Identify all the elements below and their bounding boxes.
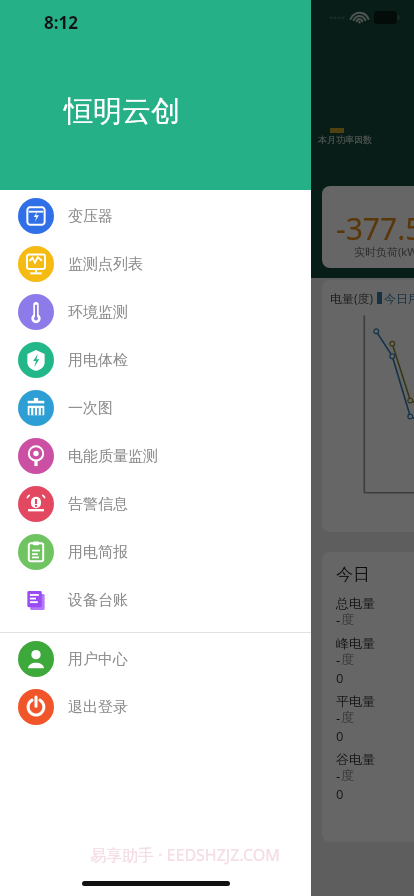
button[interactable]: 一次图: [0, 384, 311, 432]
staticText: 一次图: [68, 399, 311, 418]
staticText: 度: [341, 651, 354, 667]
staticText: 退出登录: [68, 698, 311, 717]
button[interactable]: 设备台账: [0, 576, 311, 624]
button[interactable]: 用户中心: [0, 635, 311, 683]
staticText: 度: [341, 767, 354, 783]
staticText: 环境监测: [68, 303, 311, 322]
button[interactable]: 环境监测: [0, 288, 311, 336]
staticText: 恒明云创: [64, 93, 180, 130]
staticText: 0: [336, 785, 344, 803]
staticText: -: [336, 709, 341, 727]
staticText: -377.5: [336, 208, 414, 249]
staticText: -: [336, 651, 341, 669]
button[interactable]: 电能质量监测: [0, 432, 311, 480]
staticText: -: [336, 767, 341, 785]
button[interactable]: 退出登录: [0, 683, 311, 731]
staticText: 变压器: [68, 207, 311, 226]
staticText: 今日用电: [384, 291, 414, 306]
button[interactable]: 告警信息: [0, 480, 311, 528]
staticText: 总电量: [336, 595, 375, 611]
button[interactable]: 监测点列表: [0, 240, 311, 288]
staticText: 峰电量: [336, 635, 375, 651]
staticText: 平电量: [336, 693, 375, 709]
staticText: 设备台账: [68, 591, 311, 610]
staticText: 今日: [336, 564, 370, 585]
staticText: 易享助手 · EEDSHZJZ.COM: [90, 844, 280, 866]
staticText: 度: [341, 611, 354, 627]
staticText: 本月功率因数: [318, 134, 372, 145]
button[interactable]: 变压器: [0, 192, 311, 240]
staticText: 用电简报: [68, 543, 311, 562]
staticText: 实时负荷(kW): [354, 244, 414, 259]
staticText: 电量(度): [330, 290, 374, 306]
staticText: 谷电量: [336, 751, 375, 767]
staticText: 度: [341, 709, 354, 725]
staticText: 告警信息: [68, 495, 311, 514]
staticText: -: [336, 611, 341, 629]
staticText: 监测点列表: [68, 255, 311, 274]
staticText: 0: [336, 727, 344, 745]
button[interactable]: 用电体检: [0, 336, 311, 384]
button[interactable]: 用电简报: [0, 528, 311, 576]
staticText: 电能质量监测: [68, 447, 311, 466]
staticText: 用户中心: [68, 650, 311, 669]
staticText: 用电体检: [68, 351, 311, 370]
staticText: 0: [336, 669, 344, 687]
staticText: 8:12: [44, 11, 78, 34]
